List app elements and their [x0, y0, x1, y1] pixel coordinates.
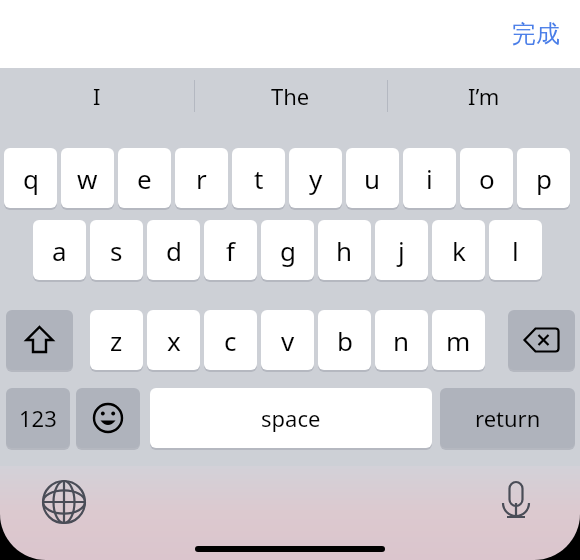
staticText: I	[93, 81, 101, 111]
button[interactable]: I’m	[387, 68, 580, 124]
button[interactable]: a	[33, 220, 86, 280]
staticText: 123	[19, 403, 57, 433]
button[interactable]: w	[61, 148, 114, 208]
button[interactable]: p	[517, 148, 570, 208]
staticText: h	[336, 233, 353, 268]
staticText: z	[110, 323, 123, 358]
staticText: k	[452, 233, 466, 268]
staticText: r	[196, 161, 207, 196]
button[interactable]: b	[318, 310, 371, 370]
button[interactable]: q	[4, 148, 57, 208]
staticText: m	[446, 323, 471, 358]
staticText: n	[393, 323, 410, 358]
staticText: f	[226, 233, 235, 268]
staticText: return	[475, 403, 541, 433]
button[interactable]: t	[232, 148, 285, 208]
button[interactable]: f	[204, 220, 257, 280]
button[interactable]: r	[175, 148, 228, 208]
button[interactable]: j	[375, 220, 428, 280]
staticText: v	[281, 323, 295, 358]
button[interactable]: The	[194, 68, 387, 124]
staticText: s	[110, 233, 123, 268]
staticText: i	[426, 161, 433, 196]
staticText: u	[364, 161, 381, 196]
button[interactable]: h	[318, 220, 371, 280]
button[interactable]: space	[150, 388, 432, 448]
button[interactable]: return	[440, 388, 575, 448]
button[interactable]: Dictation	[492, 478, 540, 526]
button[interactable]: g	[261, 220, 314, 280]
staticText: e	[137, 161, 152, 196]
staticText: space	[261, 403, 321, 433]
staticText: t	[254, 161, 264, 196]
button[interactable]: u	[346, 148, 399, 208]
button[interactable]: l	[489, 220, 542, 280]
button[interactable]: z	[90, 310, 143, 370]
staticText: o	[479, 161, 495, 196]
button[interactable]: Shift	[6, 310, 73, 370]
button[interactable]: d	[147, 220, 200, 280]
button[interactable]: e	[118, 148, 171, 208]
staticText: p	[536, 161, 552, 196]
staticText: g	[280, 233, 296, 268]
staticText: d	[166, 233, 182, 268]
staticText: b	[337, 323, 353, 358]
button[interactable]: Switch keyboard	[40, 478, 88, 526]
button[interactable]: I	[0, 68, 194, 124]
button[interactable]: o	[460, 148, 513, 208]
staticText: a	[52, 233, 67, 268]
button[interactable]: k	[432, 220, 485, 280]
button[interactable]: x	[147, 310, 200, 370]
staticText: w	[77, 161, 98, 196]
staticText: y	[309, 161, 323, 196]
button[interactable]: c	[204, 310, 257, 370]
staticText: q	[23, 161, 39, 196]
button[interactable]: s	[90, 220, 143, 280]
staticText: x	[167, 323, 181, 358]
button[interactable]: n	[375, 310, 428, 370]
button[interactable]: m	[432, 310, 485, 370]
button[interactable]: Emoji	[76, 388, 140, 448]
button[interactable]: v	[261, 310, 314, 370]
staticText: l	[512, 233, 519, 268]
button[interactable]: 完成	[506, 15, 566, 53]
button[interactable]: i	[403, 148, 456, 208]
staticText: 完成	[512, 19, 560, 49]
button[interactable]: Numbers	[6, 388, 70, 448]
button[interactable]: Backspace	[508, 310, 575, 370]
staticText: The	[271, 81, 310, 111]
staticText: j	[398, 233, 405, 268]
staticText: I’m	[468, 81, 500, 111]
staticText: c	[224, 323, 237, 358]
button[interactable]: y	[289, 148, 342, 208]
